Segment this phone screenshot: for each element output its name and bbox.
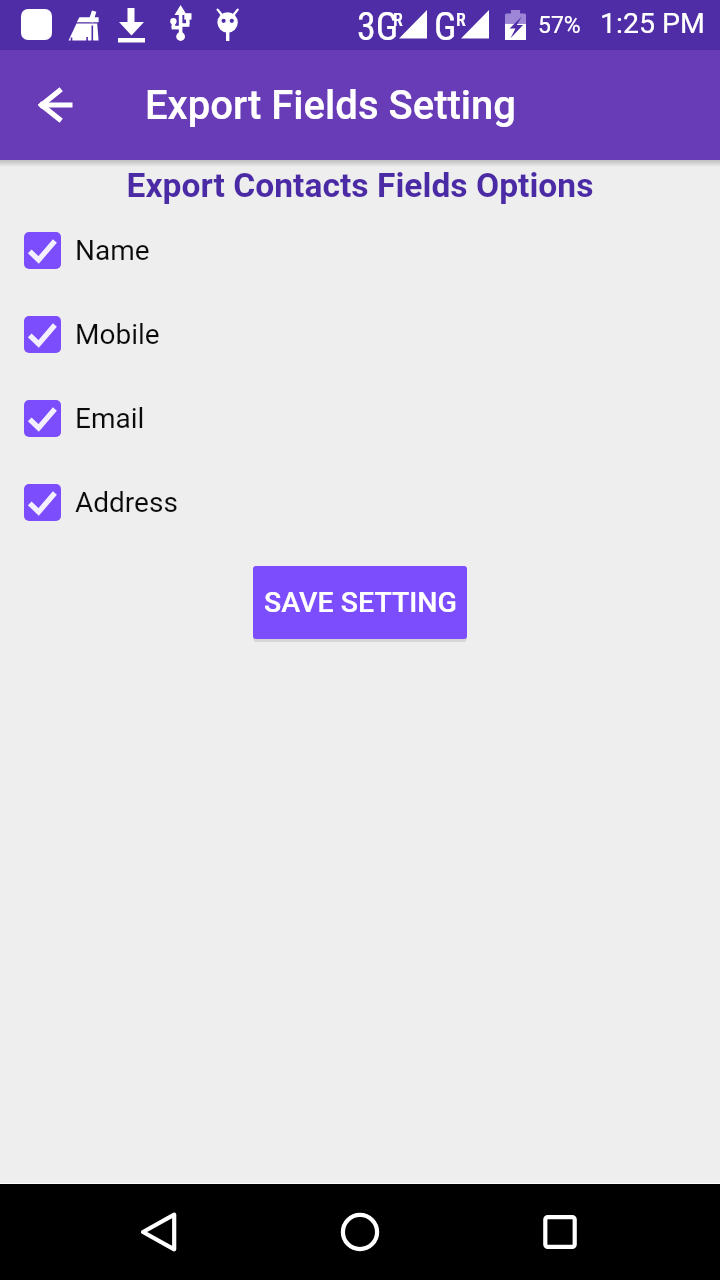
button[interactable]: SAVE SETTING [253,566,467,639]
staticText: R [456,9,466,30]
button[interactable]: Home [328,1200,392,1264]
staticText: Address [75,486,178,519]
staticText: Email [75,402,145,435]
button[interactable]: Name [0,208,720,292]
staticText: G [434,5,457,50]
staticText: Mobile [75,318,160,351]
button[interactable]: Email [0,376,720,460]
staticText: R [393,9,403,30]
staticText: Name [75,234,150,267]
staticText: Export Contacts Fields Options [0,166,720,205]
button[interactable]: Address [0,460,720,544]
staticText: 1:25 PM [600,7,705,40]
staticText: 3G [357,5,399,50]
button[interactable]: Back [127,1200,191,1264]
staticText: 57% [538,12,581,39]
button[interactable]: Mobile [0,292,720,376]
button[interactable]: Recent apps [528,1200,592,1264]
button[interactable]: Back [23,72,89,138]
staticText: Export Fields Setting [145,82,516,129]
staticText: SAVE SETTING [264,586,457,619]
